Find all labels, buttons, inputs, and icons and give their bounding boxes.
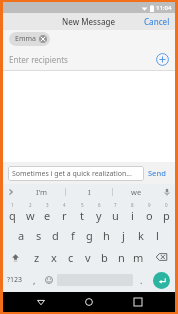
staticText: .	[140, 274, 143, 286]
staticText: v	[85, 250, 91, 265]
staticText: h	[103, 228, 110, 243]
staticText: y	[96, 208, 102, 223]
button[interactable]: Recents	[127, 292, 149, 312]
button[interactable]: v	[79, 246, 96, 268]
staticText: r	[62, 208, 67, 223]
staticText: f	[71, 228, 75, 243]
button[interactable]: Send	[144, 165, 170, 181]
button[interactable]: 2	[21, 200, 39, 224]
button[interactable]: d	[47, 224, 64, 246]
button[interactable]: c	[62, 246, 79, 268]
button[interactable]: ,	[27, 268, 41, 292]
button[interactable]: 1	[3, 200, 21, 224]
button[interactable]: l	[149, 224, 166, 246]
staticText: Cancel	[144, 16, 170, 27]
staticText: Send	[148, 168, 166, 178]
button[interactable]: ?123	[3, 268, 27, 292]
staticText: q	[9, 208, 16, 223]
button[interactable]: Cancel	[139, 13, 175, 30]
staticText: 0	[165, 202, 168, 208]
staticText: k	[138, 228, 144, 243]
staticText: g	[86, 228, 93, 243]
staticText: 11:04	[156, 4, 172, 12]
button[interactable]: I'm	[19, 184, 65, 200]
staticText: 2	[29, 202, 32, 208]
button[interactable]: s	[30, 224, 47, 246]
button[interactable]: m	[130, 246, 147, 268]
staticText: l	[156, 228, 159, 243]
button[interactable]: 6	[90, 200, 107, 224]
staticText: 3	[46, 202, 49, 208]
staticText: n	[118, 250, 125, 265]
staticText: 7	[114, 202, 117, 208]
staticText: o	[146, 208, 153, 223]
button[interactable]: Emma	[9, 32, 50, 46]
staticText: t	[80, 208, 84, 223]
staticText: 1	[11, 202, 14, 208]
button[interactable]: Add recipient	[156, 53, 169, 66]
staticText: e	[44, 208, 51, 223]
button[interactable]: Sometimes i get a quick realization...	[8, 166, 144, 181]
staticText: j	[122, 228, 125, 243]
button[interactable]: g	[81, 224, 98, 246]
button[interactable]: 5	[73, 200, 90, 224]
button[interactable]: 3	[39, 200, 56, 224]
button[interactable]: 9	[141, 200, 158, 224]
button[interactable]: Back	[30, 292, 52, 312]
staticText: a	[18, 228, 25, 243]
staticText: u	[112, 208, 119, 223]
button[interactable]: h	[98, 224, 115, 246]
button[interactable]: Enter recipients	[3, 48, 175, 70]
button[interactable]: Backspace	[147, 246, 175, 268]
button[interactable]: Emoji	[41, 268, 56, 292]
staticText: 8	[131, 202, 134, 208]
staticText: b	[101, 250, 108, 265]
button[interactable]: j	[115, 224, 132, 246]
staticText: c	[68, 250, 74, 265]
staticText: w	[26, 208, 35, 223]
button[interactable]: n	[113, 246, 130, 268]
button[interactable]: x	[45, 246, 62, 268]
staticText: I	[88, 187, 91, 197]
button[interactable]: we	[113, 184, 159, 200]
button[interactable]: Enter	[153, 272, 170, 289]
staticText: ,	[33, 274, 36, 286]
button[interactable]: Home	[78, 292, 100, 312]
staticText: d	[52, 228, 59, 243]
staticText: Enter recipients	[9, 54, 156, 65]
button[interactable]: k	[132, 224, 149, 246]
staticText: z	[34, 250, 40, 265]
button[interactable]: 0	[158, 200, 175, 224]
staticText: ?123	[7, 275, 23, 285]
staticText: 6	[98, 202, 101, 208]
button[interactable]: z	[28, 246, 45, 268]
button[interactable]: .	[134, 268, 148, 292]
staticText: i	[131, 208, 134, 223]
staticText: s	[36, 228, 42, 243]
staticText: we	[131, 187, 142, 197]
staticText: m	[133, 250, 144, 265]
button[interactable]: 8	[124, 200, 141, 224]
button[interactable]: 7	[107, 200, 124, 224]
staticText: New Message	[62, 16, 116, 27]
button[interactable]: f	[64, 224, 81, 246]
button[interactable]: a	[13, 224, 30, 246]
staticText: p	[163, 208, 170, 223]
staticText: Sometimes i get a quick realization...	[12, 169, 132, 179]
staticText: 9	[148, 202, 151, 208]
button[interactable]: I	[66, 184, 112, 200]
staticText: Emma	[15, 34, 36, 44]
other: Remove Emma	[39, 35, 47, 43]
staticText: 4	[63, 202, 66, 208]
staticText: I'm	[36, 187, 48, 197]
staticText: 5	[81, 202, 84, 208]
staticText: x	[51, 250, 57, 265]
button[interactable]: More suggestions	[3, 184, 19, 200]
button[interactable]: Voice input	[159, 184, 175, 200]
button[interactable]: b	[96, 246, 113, 268]
button[interactable]: Shift	[3, 246, 28, 268]
button[interactable]: 4	[56, 200, 73, 224]
